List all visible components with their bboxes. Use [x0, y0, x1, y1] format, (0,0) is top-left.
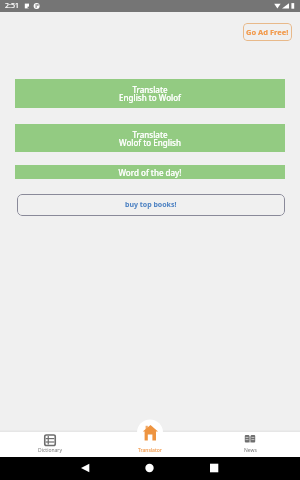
- button[interactable]: Translator: [100, 418, 200, 457]
- button[interactable]: Recent apps: [200, 457, 300, 480]
- staticText: Dictionary: [38, 447, 62, 454]
- staticText: Word of the day!: [118, 167, 182, 178]
- staticText: News: [244, 447, 257, 454]
- staticText: 2:51: [5, 1, 19, 11]
- staticText: Translator: [138, 447, 162, 454]
- staticText: Translate English to Wolof: [119, 84, 181, 103]
- button[interactable]: buy top books!: [17, 194, 285, 216]
- staticText: Translate Wolof to English: [119, 129, 181, 148]
- staticText: Go Ad Free!: [246, 27, 289, 37]
- button[interactable]: Home: [100, 457, 200, 480]
- button[interactable]: Translate English to Wolof: [15, 79, 285, 108]
- button[interactable]: News: [200, 418, 300, 457]
- button[interactable]: Word of the day!: [15, 165, 285, 179]
- button[interactable]: Back: [0, 457, 100, 480]
- button[interactable]: Dictionary: [0, 418, 100, 457]
- staticText: buy top books!: [125, 200, 177, 210]
- button[interactable]: Translate Wolof to English: [15, 124, 285, 152]
- button[interactable]: Go Ad Free!: [243, 23, 292, 41]
